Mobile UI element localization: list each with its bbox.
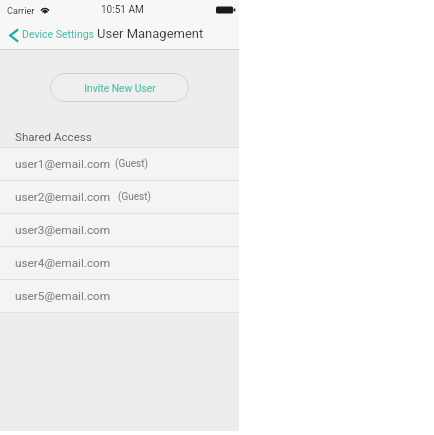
button[interactable]: user2@email.com	[0, 181, 239, 214]
staticText: user4@email.com	[15, 256, 111, 270]
staticText: user3@email.com	[15, 223, 111, 237]
staticText: Invite New User	[84, 82, 156, 94]
button[interactable]: Device Settings	[2, 26, 98, 45]
staticText: Carrier	[7, 5, 35, 16]
staticText: user1@email.com	[15, 157, 111, 171]
button[interactable]: user4@email.com	[0, 247, 239, 280]
button[interactable]: Invite New User	[50, 73, 189, 102]
staticText: user2@email.com	[15, 190, 111, 204]
staticText: Device Settings	[22, 28, 95, 40]
button[interactable]: user1@email.com	[0, 148, 239, 181]
staticText: (Guest)	[118, 191, 151, 203]
staticText: user5@email.com	[15, 289, 111, 303]
staticText: User Management	[97, 26, 204, 41]
staticText: Shared Access	[15, 130, 92, 144]
staticText: 10:51 AM	[101, 4, 144, 16]
staticText: (Guest)	[115, 158, 148, 170]
button[interactable]: user3@email.com	[0, 214, 239, 247]
button[interactable]: user5@email.com	[0, 280, 239, 313]
